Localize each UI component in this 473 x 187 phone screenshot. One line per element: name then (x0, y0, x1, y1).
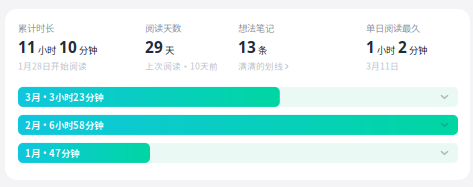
button[interactable]: 1月・47分钟 (18, 143, 458, 163)
staticText: 分钟 (409, 43, 427, 56)
staticText: 11 (18, 36, 36, 57)
staticText: 3月・3小时23分钟 (25, 90, 103, 104)
staticText: 3月11日 (366, 59, 399, 72)
staticText: 10 (59, 36, 77, 57)
button[interactable]: 2月・6小时58分钟 (18, 115, 458, 135)
staticText: 分钟 (79, 43, 97, 56)
staticText: 1月28日开始阅读 (18, 59, 87, 72)
staticText: 2月・6小时58分钟 (25, 118, 103, 132)
staticText: 2 (398, 36, 407, 57)
button[interactable]: 阅读天数 (145, 21, 238, 72)
staticText: 小时 (377, 43, 395, 56)
staticText: 天 (165, 43, 174, 56)
staticText: 满满的划线 (238, 59, 283, 72)
staticText: 条 (258, 43, 267, 56)
button[interactable]: 单日阅读最久 (366, 21, 470, 72)
button[interactable]: 3月・3小时23分钟 (18, 87, 458, 107)
button[interactable]: 想法笔记 (238, 21, 366, 72)
staticText: 上次阅读・10天前 (145, 59, 218, 72)
staticText: 13 (238, 36, 256, 57)
staticText: 累计时长 (18, 21, 54, 34)
staticText: 1 (366, 36, 375, 57)
button[interactable]: 累计时长 (18, 21, 145, 72)
staticText: 29 (145, 36, 163, 57)
staticText: 1月・47分钟 (25, 146, 79, 160)
staticText: 单日阅读最久 (366, 21, 420, 34)
staticText: 阅读天数 (145, 21, 181, 34)
staticText: 小时 (38, 43, 56, 56)
staticText: 想法笔记 (238, 21, 274, 34)
